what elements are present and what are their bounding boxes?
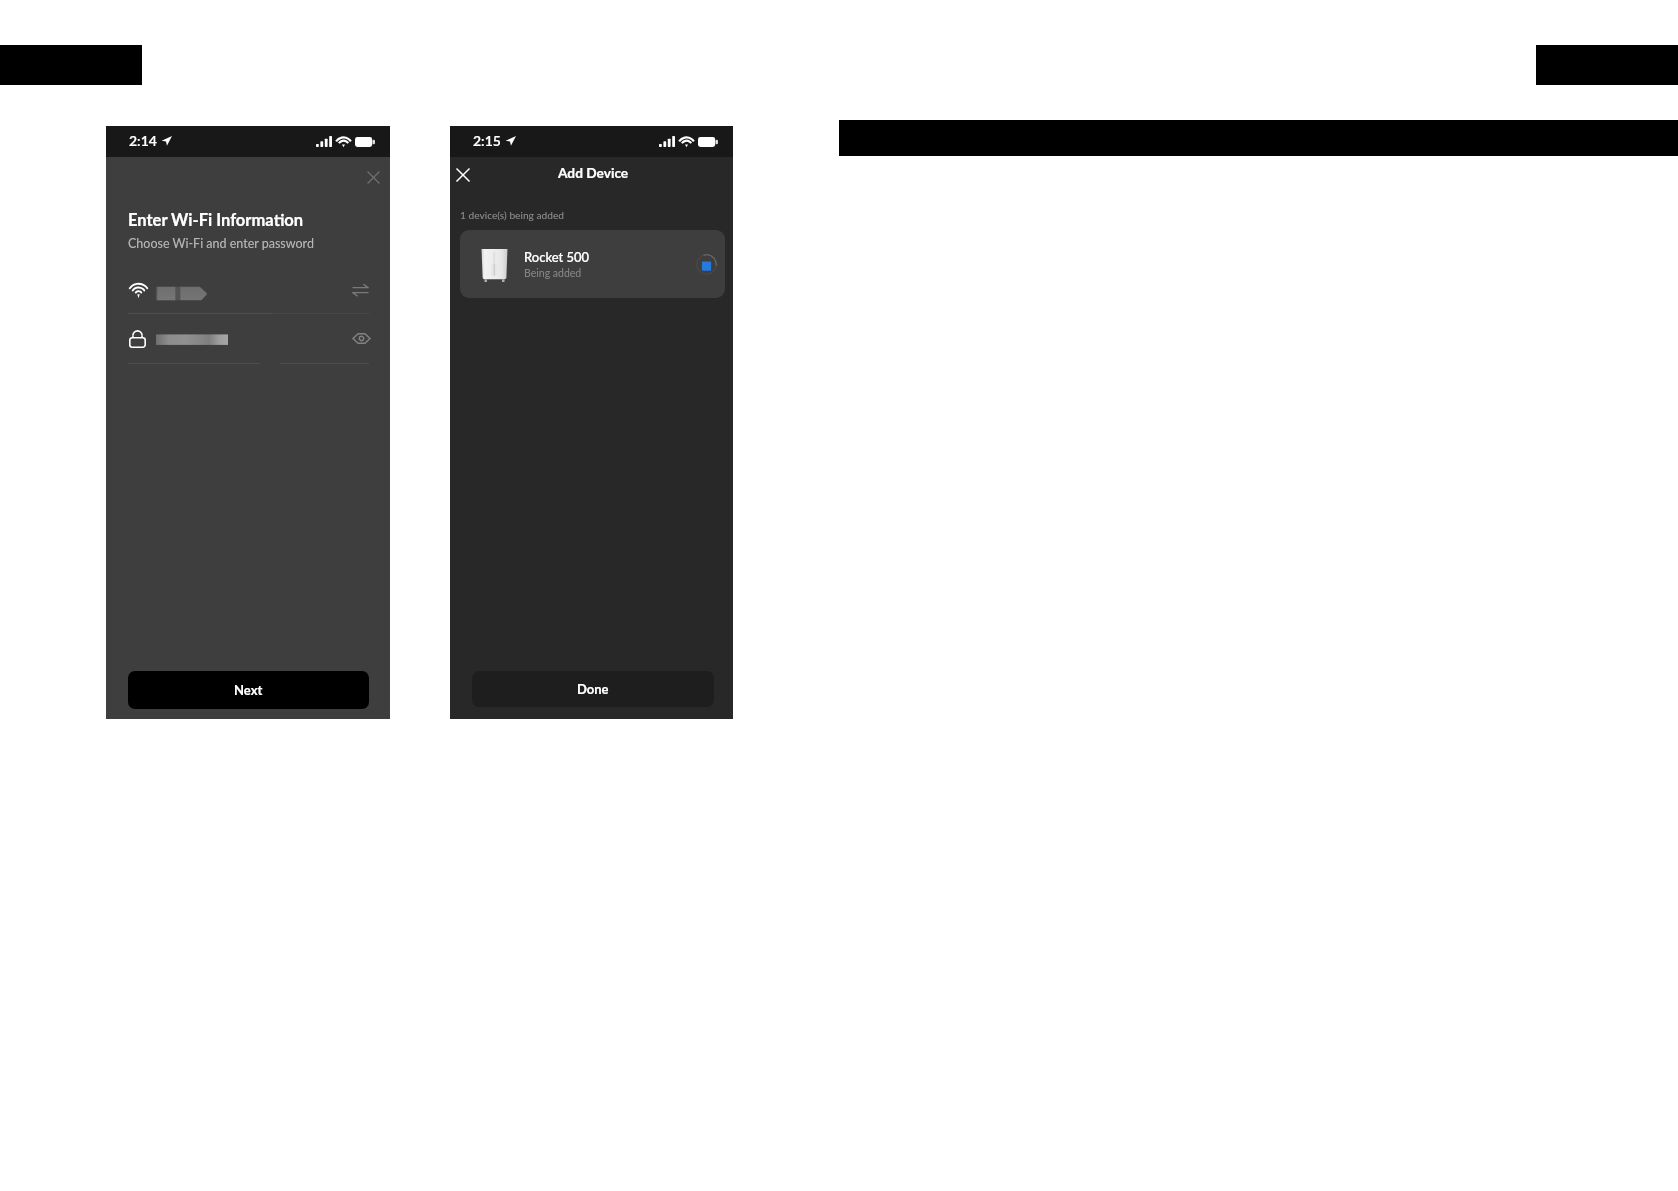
staticText: 2:15	[473, 132, 501, 149]
staticText: Add Device	[558, 164, 629, 180]
staticText: Rocket 500	[524, 249, 590, 265]
button[interactable]: Switch network	[346, 276, 374, 304]
staticText: Being added	[524, 267, 582, 280]
button[interactable]: Close	[361, 165, 385, 189]
button[interactable]: Done	[472, 671, 714, 707]
staticText: 1 device(s) being added	[460, 209, 565, 221]
staticText: Enter Wi-Fi Information	[128, 210, 303, 230]
staticText: Done	[577, 681, 609, 697]
staticText: 2:14	[129, 132, 157, 149]
button[interactable]: Next	[128, 671, 369, 709]
staticText: Choose Wi-Fi and enter password	[128, 236, 314, 251]
staticText: Next	[234, 682, 263, 698]
button[interactable]: Close	[451, 163, 475, 187]
button[interactable]: Cancel adding device	[694, 252, 718, 276]
button[interactable]: Rocket 500	[460, 230, 725, 298]
button[interactable]: Show password	[347, 324, 375, 352]
